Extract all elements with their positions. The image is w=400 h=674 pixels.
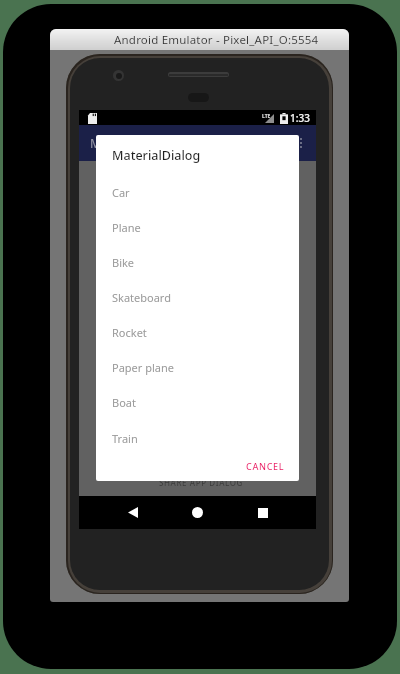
staticText: Plane <box>112 220 141 235</box>
button[interactable]: Car <box>96 175 299 210</box>
staticText: MaterialDialog <box>112 147 201 164</box>
staticText: Train <box>112 431 138 446</box>
button[interactable]: Plane <box>96 210 299 245</box>
button[interactable]: Train <box>96 421 299 456</box>
button[interactable]: Home <box>170 496 225 529</box>
staticText: CANCEL <box>246 460 285 472</box>
button[interactable]: Paper plane <box>96 350 299 385</box>
button[interactable]: CANCEL <box>238 455 293 477</box>
button[interactable]: More options <box>294 132 308 154</box>
staticText: MaterialDialog <box>90 135 175 151</box>
button[interactable]: SHARE APP DIALOG <box>83 473 320 491</box>
button[interactable]: Recent apps <box>235 496 290 529</box>
staticText: LTE <box>262 113 271 120</box>
staticText: 1:33 <box>290 111 310 125</box>
staticText: Car <box>112 185 130 200</box>
staticText: Android Emulator - Pixel_API_O:5554 <box>114 32 319 48</box>
staticText: SHARE APP DIALOG <box>159 477 244 488</box>
button[interactable]: Bike <box>96 245 299 280</box>
button[interactable]: Skateboard <box>96 280 299 315</box>
staticText: Rocket <box>112 325 147 340</box>
staticText: Skateboard <box>112 290 171 305</box>
button[interactable]: Boat <box>96 385 299 420</box>
staticText: Bike <box>112 255 135 270</box>
button[interactable]: Rocket <box>96 315 299 350</box>
button[interactable]: Back <box>105 496 160 529</box>
staticText: Paper plane <box>112 360 174 375</box>
staticText: Boat <box>112 395 136 410</box>
